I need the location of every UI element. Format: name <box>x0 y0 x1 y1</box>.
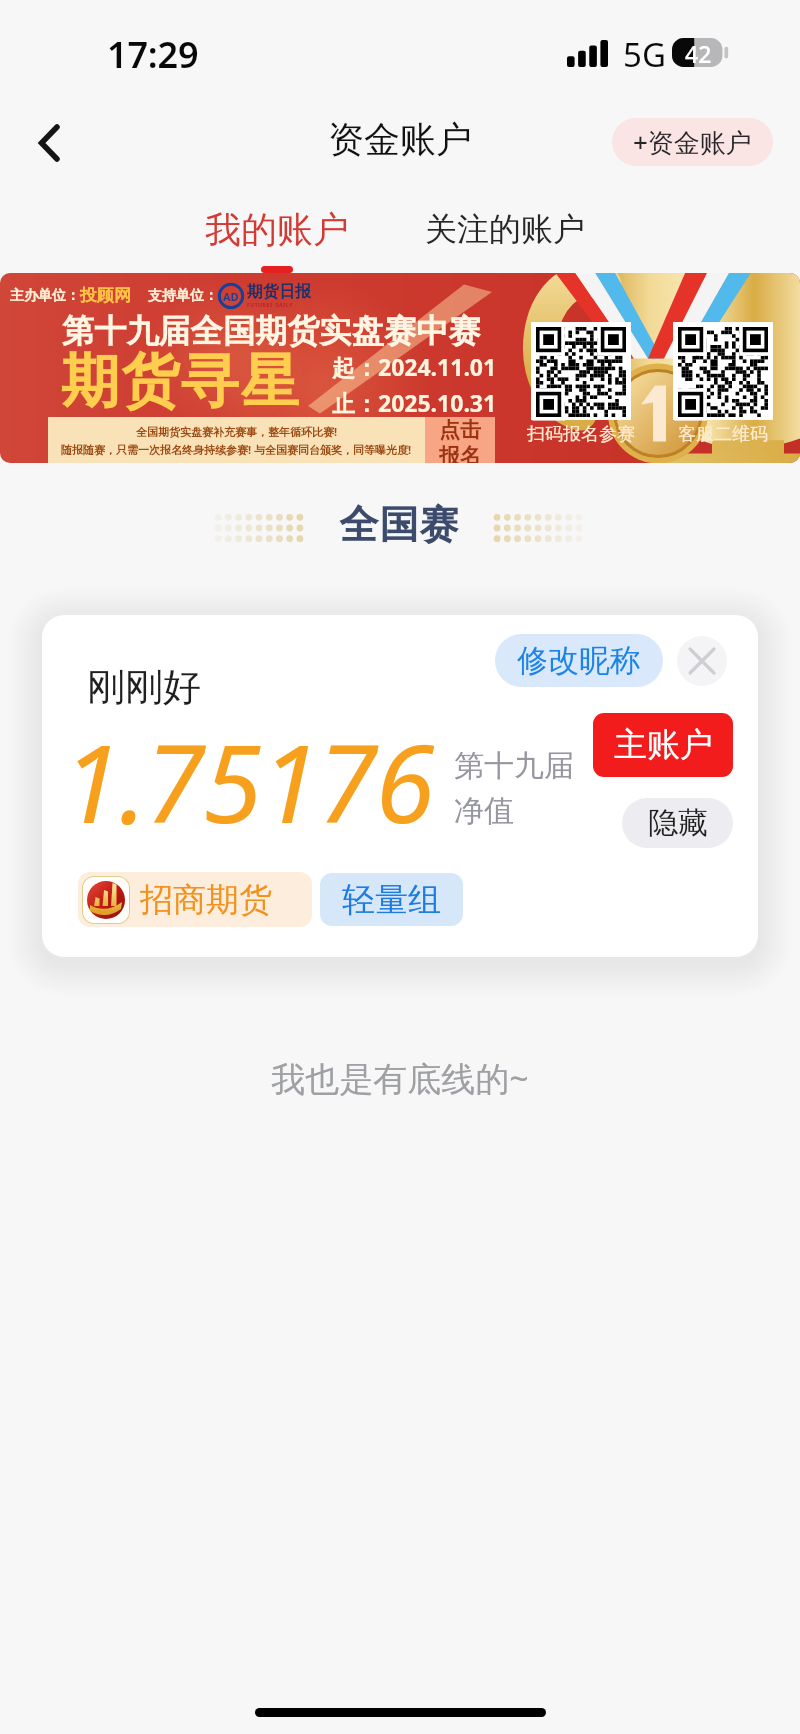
staticText: 期货寻星 <box>60 345 300 418</box>
staticText: 1.75176 <box>62 708 433 855</box>
staticText: 报名 <box>439 443 481 463</box>
button[interactable]: Back <box>19 113 79 173</box>
staticText: 投顾网 <box>80 285 131 306</box>
button[interactable]: 轻量组 <box>320 873 463 926</box>
staticText: 点击 <box>439 417 481 443</box>
staticText: 资金账户 <box>328 117 472 162</box>
staticText: 我也是有底线的~ <box>0 1055 800 1101</box>
staticText: 主账户 <box>614 724 713 766</box>
staticText: +资金账户 <box>633 124 752 160</box>
staticText: FUTURES DAILY <box>247 302 293 309</box>
button[interactable]: 点击 <box>425 417 495 463</box>
button[interactable]: 修改昵称 <box>495 634 663 687</box>
staticText: 17:29 <box>107 30 199 79</box>
staticText: 隐藏 <box>648 804 708 842</box>
staticText: 全国赛 <box>339 500 459 549</box>
staticText: 第十九届全国期货实盘赛中赛 <box>62 311 481 351</box>
staticText: 扫码报名参赛 <box>527 423 635 446</box>
staticText: 随报随赛，只需一次报名终身持续参赛! 与全国赛同台颁奖，同等曝光度! <box>61 442 412 457</box>
staticText: 期货日报 <box>247 282 311 302</box>
staticText: 支持单位： <box>148 287 218 305</box>
staticText: 第十九届 <box>454 747 574 785</box>
button[interactable]: 主账户 <box>593 713 733 777</box>
button[interactable]: 隐藏 <box>622 798 733 848</box>
button[interactable]: 主办单位： <box>0 273 800 463</box>
staticText: 客服二维码 <box>678 423 768 446</box>
staticText: 42 <box>685 38 712 67</box>
staticText: 主办单位： <box>10 287 80 305</box>
staticText: AD <box>223 289 239 304</box>
button[interactable]: 刚刚好 <box>42 615 758 957</box>
button[interactable]: 关注的账户 <box>409 209 601 249</box>
staticText: 5G <box>623 32 666 77</box>
button[interactable]: 我的账户 <box>189 190 365 273</box>
staticText: 全国期货实盘赛补充赛事，整年循环比赛! <box>136 424 338 439</box>
button[interactable]: Close <box>677 636 727 686</box>
staticText: 止：2025.10.31 <box>332 387 497 418</box>
button[interactable]: 招商期货 <box>78 872 312 927</box>
button[interactable]: +资金账户 <box>612 118 773 166</box>
staticText: 净值 <box>454 792 514 830</box>
staticText: 我的账户 <box>205 207 349 252</box>
staticText: 刚刚好 <box>87 663 201 711</box>
staticText: 招商期货 <box>140 879 272 921</box>
staticText: 起：2024.11.01 <box>332 351 497 382</box>
staticText: 关注的账户 <box>425 209 585 249</box>
staticText: 修改昵称 <box>517 641 641 680</box>
staticText: 轻量组 <box>342 879 441 921</box>
